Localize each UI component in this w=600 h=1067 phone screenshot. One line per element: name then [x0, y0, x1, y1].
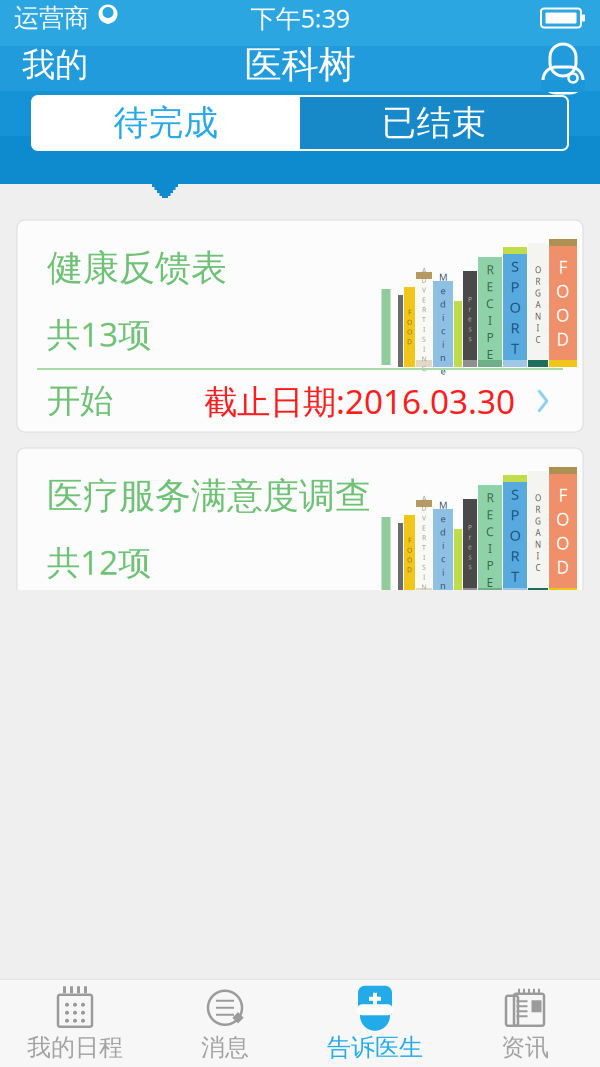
staticText: s [468, 562, 471, 571]
staticText: O [535, 493, 541, 503]
staticText: G [535, 516, 541, 527]
staticText: A [422, 266, 426, 275]
staticText: O [556, 303, 570, 326]
staticText: 资讯 [501, 1033, 549, 1062]
staticText: S [511, 484, 519, 504]
staticText: 健康反馈表 [47, 246, 227, 290]
staticText: T [422, 543, 426, 552]
staticText: D [421, 276, 426, 285]
staticText: M [439, 499, 447, 511]
staticText: F [408, 536, 411, 545]
staticText: c [441, 324, 445, 337]
staticText: T [511, 566, 519, 586]
button[interactable]: 消息 [150, 980, 300, 1067]
staticText: e [468, 543, 472, 551]
staticText: F [558, 255, 567, 278]
staticText: 下午5:39 [250, 1, 349, 35]
staticText: N [535, 539, 541, 550]
staticText: 医科树 [244, 42, 355, 88]
staticText: E [422, 523, 426, 532]
staticText: 共12项 [47, 540, 151, 584]
button[interactable]: 资讯 [450, 980, 600, 1067]
staticText: D [407, 565, 412, 574]
staticText: 运营商 [14, 2, 89, 33]
staticText: O [535, 265, 541, 275]
staticText: P [486, 329, 493, 345]
button[interactable]: F [17, 448, 583, 660]
staticText: D [556, 327, 569, 350]
staticText: I [536, 551, 539, 561]
button[interactable]: 我的 [0, 34, 110, 95]
staticText: 我的 [22, 44, 88, 85]
staticText: 共13项 [47, 312, 151, 356]
staticText: s [468, 324, 471, 333]
staticText: G [535, 288, 541, 299]
staticText: r [468, 533, 471, 542]
staticText: 消息 [201, 1033, 249, 1062]
button[interactable]: 已结束 [300, 96, 568, 150]
staticText: T [422, 315, 426, 324]
staticText: E [486, 346, 493, 362]
staticText: I [488, 312, 492, 328]
staticText: N [535, 311, 541, 322]
staticText: s [468, 334, 471, 343]
staticText: R [486, 490, 493, 506]
staticText: O [556, 507, 570, 530]
staticText: C [486, 524, 494, 539]
button[interactable]: 待完成 [32, 96, 300, 150]
staticText: d [440, 526, 446, 538]
staticText: i [442, 338, 444, 350]
staticText: i [442, 539, 444, 551]
staticText: 截止日期:2016.03.30 [204, 379, 515, 423]
staticText: R [510, 546, 519, 565]
staticText: I [423, 325, 425, 334]
staticText: F [408, 308, 411, 317]
staticText: A [535, 528, 540, 538]
staticText: N [421, 354, 426, 363]
button[interactable]: 告诉医生 [300, 980, 450, 1067]
staticText: E [486, 574, 493, 590]
staticText: O [556, 279, 570, 302]
staticText: P [510, 505, 519, 524]
staticText: M [439, 271, 447, 283]
staticText: P [486, 557, 493, 573]
staticText: C [535, 335, 540, 345]
staticText: O [509, 525, 520, 545]
staticText: e [440, 365, 445, 377]
staticText: O [556, 531, 570, 554]
staticText: I [423, 553, 425, 562]
staticText: O [407, 555, 412, 564]
staticText: D [556, 555, 569, 578]
staticText: R [535, 276, 540, 287]
staticText: d [440, 298, 446, 310]
button[interactable]: 我的日程 [0, 980, 150, 1067]
staticText: n [440, 351, 446, 364]
staticText: I [423, 573, 425, 581]
staticText: R [486, 262, 493, 278]
staticText: P [468, 523, 472, 532]
staticText: N [421, 582, 426, 591]
staticText: e [440, 512, 445, 525]
staticText: 告诉医生 [327, 1033, 423, 1062]
button[interactable]: 我的医生 [526, 40, 600, 90]
staticText: 我的日程 [27, 1033, 123, 1062]
staticText: O [407, 327, 412, 336]
staticText: 已结束 [381, 102, 486, 144]
staticText: i [442, 566, 444, 578]
button[interactable]: F [17, 220, 583, 432]
staticText: D [421, 504, 426, 513]
staticText: i [442, 311, 444, 323]
staticText: P [510, 277, 519, 296]
staticText: F [558, 483, 567, 506]
staticText: E [422, 295, 426, 304]
staticText: D [407, 337, 412, 346]
staticText: E [486, 507, 493, 522]
staticText: I [423, 345, 425, 353]
staticText: 待完成 [113, 102, 218, 144]
staticText: R [422, 305, 426, 314]
staticText: G [421, 364, 426, 373]
staticText: V [422, 513, 426, 522]
